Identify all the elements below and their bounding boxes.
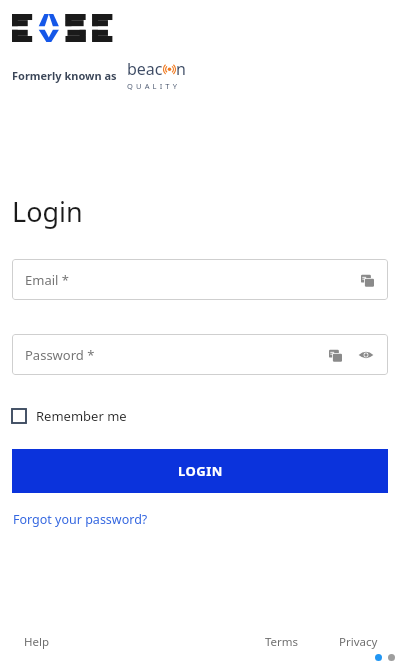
staticText: Email * xyxy=(25,271,357,289)
button[interactable]: Help xyxy=(20,630,54,654)
button[interactable]: Show password xyxy=(355,344,377,366)
staticText: LOGIN xyxy=(178,462,223,480)
button[interactable]: Autofill Password * xyxy=(325,345,345,365)
staticText: Help xyxy=(24,634,50,650)
staticText: Q U A L I T Y xyxy=(127,81,178,91)
button[interactable]: Password * xyxy=(12,334,388,375)
staticText: Password * xyxy=(25,346,325,364)
button[interactable]: Autofill Email * xyxy=(357,270,377,290)
staticText: n xyxy=(176,58,186,80)
staticText: Login xyxy=(12,193,83,230)
staticText: Remember me xyxy=(36,407,127,425)
staticText: Privacy xyxy=(339,634,378,650)
staticText: Forgot your password? xyxy=(13,511,148,528)
button[interactable]: LOGIN xyxy=(12,449,388,493)
button[interactable]: Remember me xyxy=(12,405,133,427)
button[interactable]: Terms xyxy=(261,630,303,654)
staticText: Formerly known as xyxy=(12,68,117,83)
button[interactable]: Email * xyxy=(12,259,388,300)
staticText: beac xyxy=(127,58,163,80)
button[interactable]: Forgot your password? xyxy=(12,509,149,530)
staticText: Terms xyxy=(265,634,299,650)
button[interactable]: Privacy xyxy=(335,630,382,654)
